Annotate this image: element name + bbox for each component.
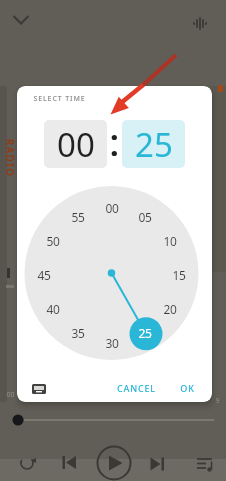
button[interactable]: CANCEL [105,377,167,399]
button[interactable] [8,8,36,36]
staticText: 20 [163,301,177,315]
button[interactable] [143,448,171,476]
staticText: 50 [46,233,60,247]
staticText: 45 [37,267,51,281]
staticText: 00 [105,200,119,214]
staticText: RADIO [5,138,16,177]
staticText: OK [180,382,195,394]
staticText: 55 [71,209,85,223]
staticText: 25 [135,122,173,167]
staticText: 30 [105,335,119,349]
button[interactable]: 25 [122,120,185,168]
staticText: 9 [215,396,220,405]
button[interactable]: 00 [44,120,107,168]
staticText: 35 [71,325,85,339]
staticText: 05 [138,209,152,223]
staticText: 10 [163,233,177,247]
staticText: 25 [138,325,152,339]
staticText: SELECT TIME [33,94,86,104]
staticText: 00 [57,122,95,167]
staticText: 40 [46,301,60,315]
button[interactable] [13,448,41,476]
staticText: CANCEL [117,382,156,394]
button[interactable]: OK [175,377,199,399]
button[interactable] [28,379,49,398]
button[interactable] [186,8,214,36]
staticText: 15 [172,267,186,281]
button[interactable] [96,445,132,481]
button[interactable] [55,448,83,476]
staticText: 00 [6,390,15,398]
button[interactable] [190,448,218,476]
